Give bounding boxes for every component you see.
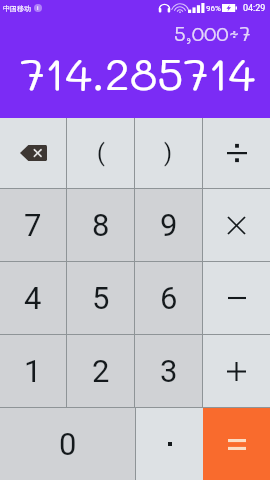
button[interactable]: Backspace — [0, 118, 66, 188]
button[interactable]: Equals — [203, 408, 270, 480]
button[interactable]: 5 — [67, 262, 134, 334]
button[interactable]: 7 — [0, 189, 66, 261]
staticText: 9 — [160, 207, 178, 243]
button[interactable]: 1 — [0, 335, 66, 407]
button[interactable]: 4 — [0, 262, 66, 334]
staticText: 714.285714 — [20, 44, 255, 102]
staticText: 0 — [59, 426, 77, 462]
button[interactable]: Decimal point — [136, 408, 203, 480]
button[interactable]: ) — [135, 118, 202, 188]
staticText: 8 — [92, 207, 110, 243]
button[interactable]: 9 — [135, 189, 202, 261]
staticText: 1 — [24, 353, 42, 389]
staticText: i — [37, 4, 39, 12]
staticText: 04:29 — [243, 3, 266, 14]
staticText: 7 — [24, 207, 42, 243]
staticText: 4 — [24, 280, 42, 316]
button[interactable]: Minus — [203, 262, 270, 334]
staticText: 2 — [92, 353, 110, 389]
staticText: 中国移动 — [3, 4, 31, 13]
staticText: 5 — [92, 280, 110, 316]
button[interactable]: ( — [67, 118, 134, 188]
button[interactable]: 2 — [67, 335, 134, 407]
button[interactable]: 8 — [67, 189, 134, 261]
button[interactable]: 6 — [135, 262, 202, 334]
staticText: 5,000÷7 — [174, 20, 251, 46]
staticText: 6 — [160, 280, 178, 316]
button[interactable]: 3 — [135, 335, 202, 407]
staticText: 96% — [206, 4, 221, 13]
staticText: ( — [97, 140, 105, 167]
button[interactable]: Divide — [203, 118, 270, 188]
button[interactable]: Plus — [203, 335, 270, 407]
staticText: ) — [164, 140, 173, 167]
button[interactable]: Multiply — [203, 189, 270, 261]
button[interactable]: 0 — [0, 408, 135, 480]
staticText: 3 — [160, 353, 178, 389]
